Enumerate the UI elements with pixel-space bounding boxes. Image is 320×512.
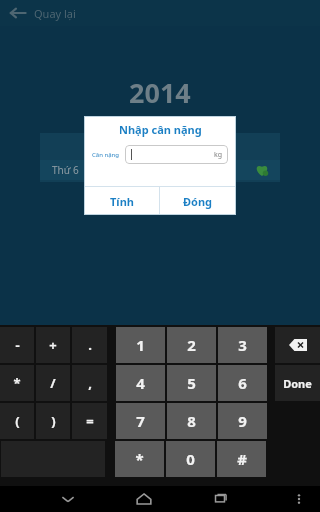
button[interactable]: 6 [218, 365, 267, 401]
staticText: Done [283, 376, 312, 391]
button[interactable]: - [0, 327, 34, 363]
staticText: 5 [187, 373, 196, 393]
staticText: # [237, 449, 247, 469]
button[interactable]: 0 [166, 441, 215, 477]
staticText: ( [15, 412, 20, 430]
button[interactable]: Thứ 6 [40, 133, 280, 182]
staticText: 8 [187, 411, 196, 431]
staticText: ) [51, 412, 56, 430]
button[interactable]: More options [284, 486, 314, 512]
button[interactable]: Backspace [275, 327, 320, 363]
staticText: Quay lại [34, 6, 76, 21]
staticText: 6 [238, 373, 247, 393]
button[interactable]: 3 [218, 327, 267, 363]
staticText: kg [214, 150, 223, 160]
button[interactable]: ( [0, 403, 34, 439]
button[interactable]: * [115, 441, 164, 477]
staticText: 9 [238, 411, 247, 431]
staticText: . [88, 336, 92, 354]
button[interactable]: Home [127, 486, 161, 512]
staticText: Thứ 6 [52, 163, 79, 177]
button[interactable]: , [72, 365, 107, 401]
button[interactable]: 8 [167, 403, 216, 439]
button[interactable]: Tính [84, 187, 159, 215]
staticText: 2014 [129, 74, 191, 111]
staticText: 1 [136, 335, 145, 355]
button[interactable]: Recent apps [203, 486, 237, 512]
other: Back [8, 3, 28, 23]
staticText: , [88, 374, 92, 392]
button[interactable]: Hide keyboard [51, 486, 85, 512]
staticText: * [13, 374, 21, 392]
staticText: 3 [238, 335, 247, 355]
button[interactable]: + [36, 327, 70, 363]
button[interactable]: kg [125, 145, 228, 164]
staticText: Tính [110, 194, 134, 209]
button[interactable]: Back [0, 0, 320, 26]
staticText: 4 [136, 373, 145, 393]
staticText: Đóng [183, 194, 213, 209]
button[interactable]: 4 [116, 365, 165, 401]
button[interactable]: # [217, 441, 266, 477]
button[interactable]: 7 [116, 403, 165, 439]
button[interactable]: Đóng [160, 187, 236, 215]
button[interactable]: . [72, 327, 107, 363]
staticText: * [135, 449, 144, 469]
staticText: 7 [136, 411, 145, 431]
staticText: + [49, 336, 57, 354]
staticText: = [86, 412, 94, 430]
staticText: - [15, 336, 20, 354]
button[interactable]: = [72, 403, 107, 439]
button[interactable]: * [0, 365, 34, 401]
staticText: 0 [186, 449, 195, 469]
button[interactable]: 1 [116, 327, 165, 363]
staticText: Nhập cân nặng [119, 122, 202, 137]
staticText: 2 [187, 335, 196, 355]
button[interactable]: Done [275, 365, 320, 401]
button[interactable]: / [36, 365, 70, 401]
staticText: / [50, 374, 56, 392]
button[interactable]: 9 [218, 403, 267, 439]
button[interactable]: 2 [167, 327, 216, 363]
button[interactable]: 5 [167, 365, 216, 401]
button[interactable]: ) [36, 403, 70, 439]
staticText: Cân nặng [92, 151, 119, 159]
